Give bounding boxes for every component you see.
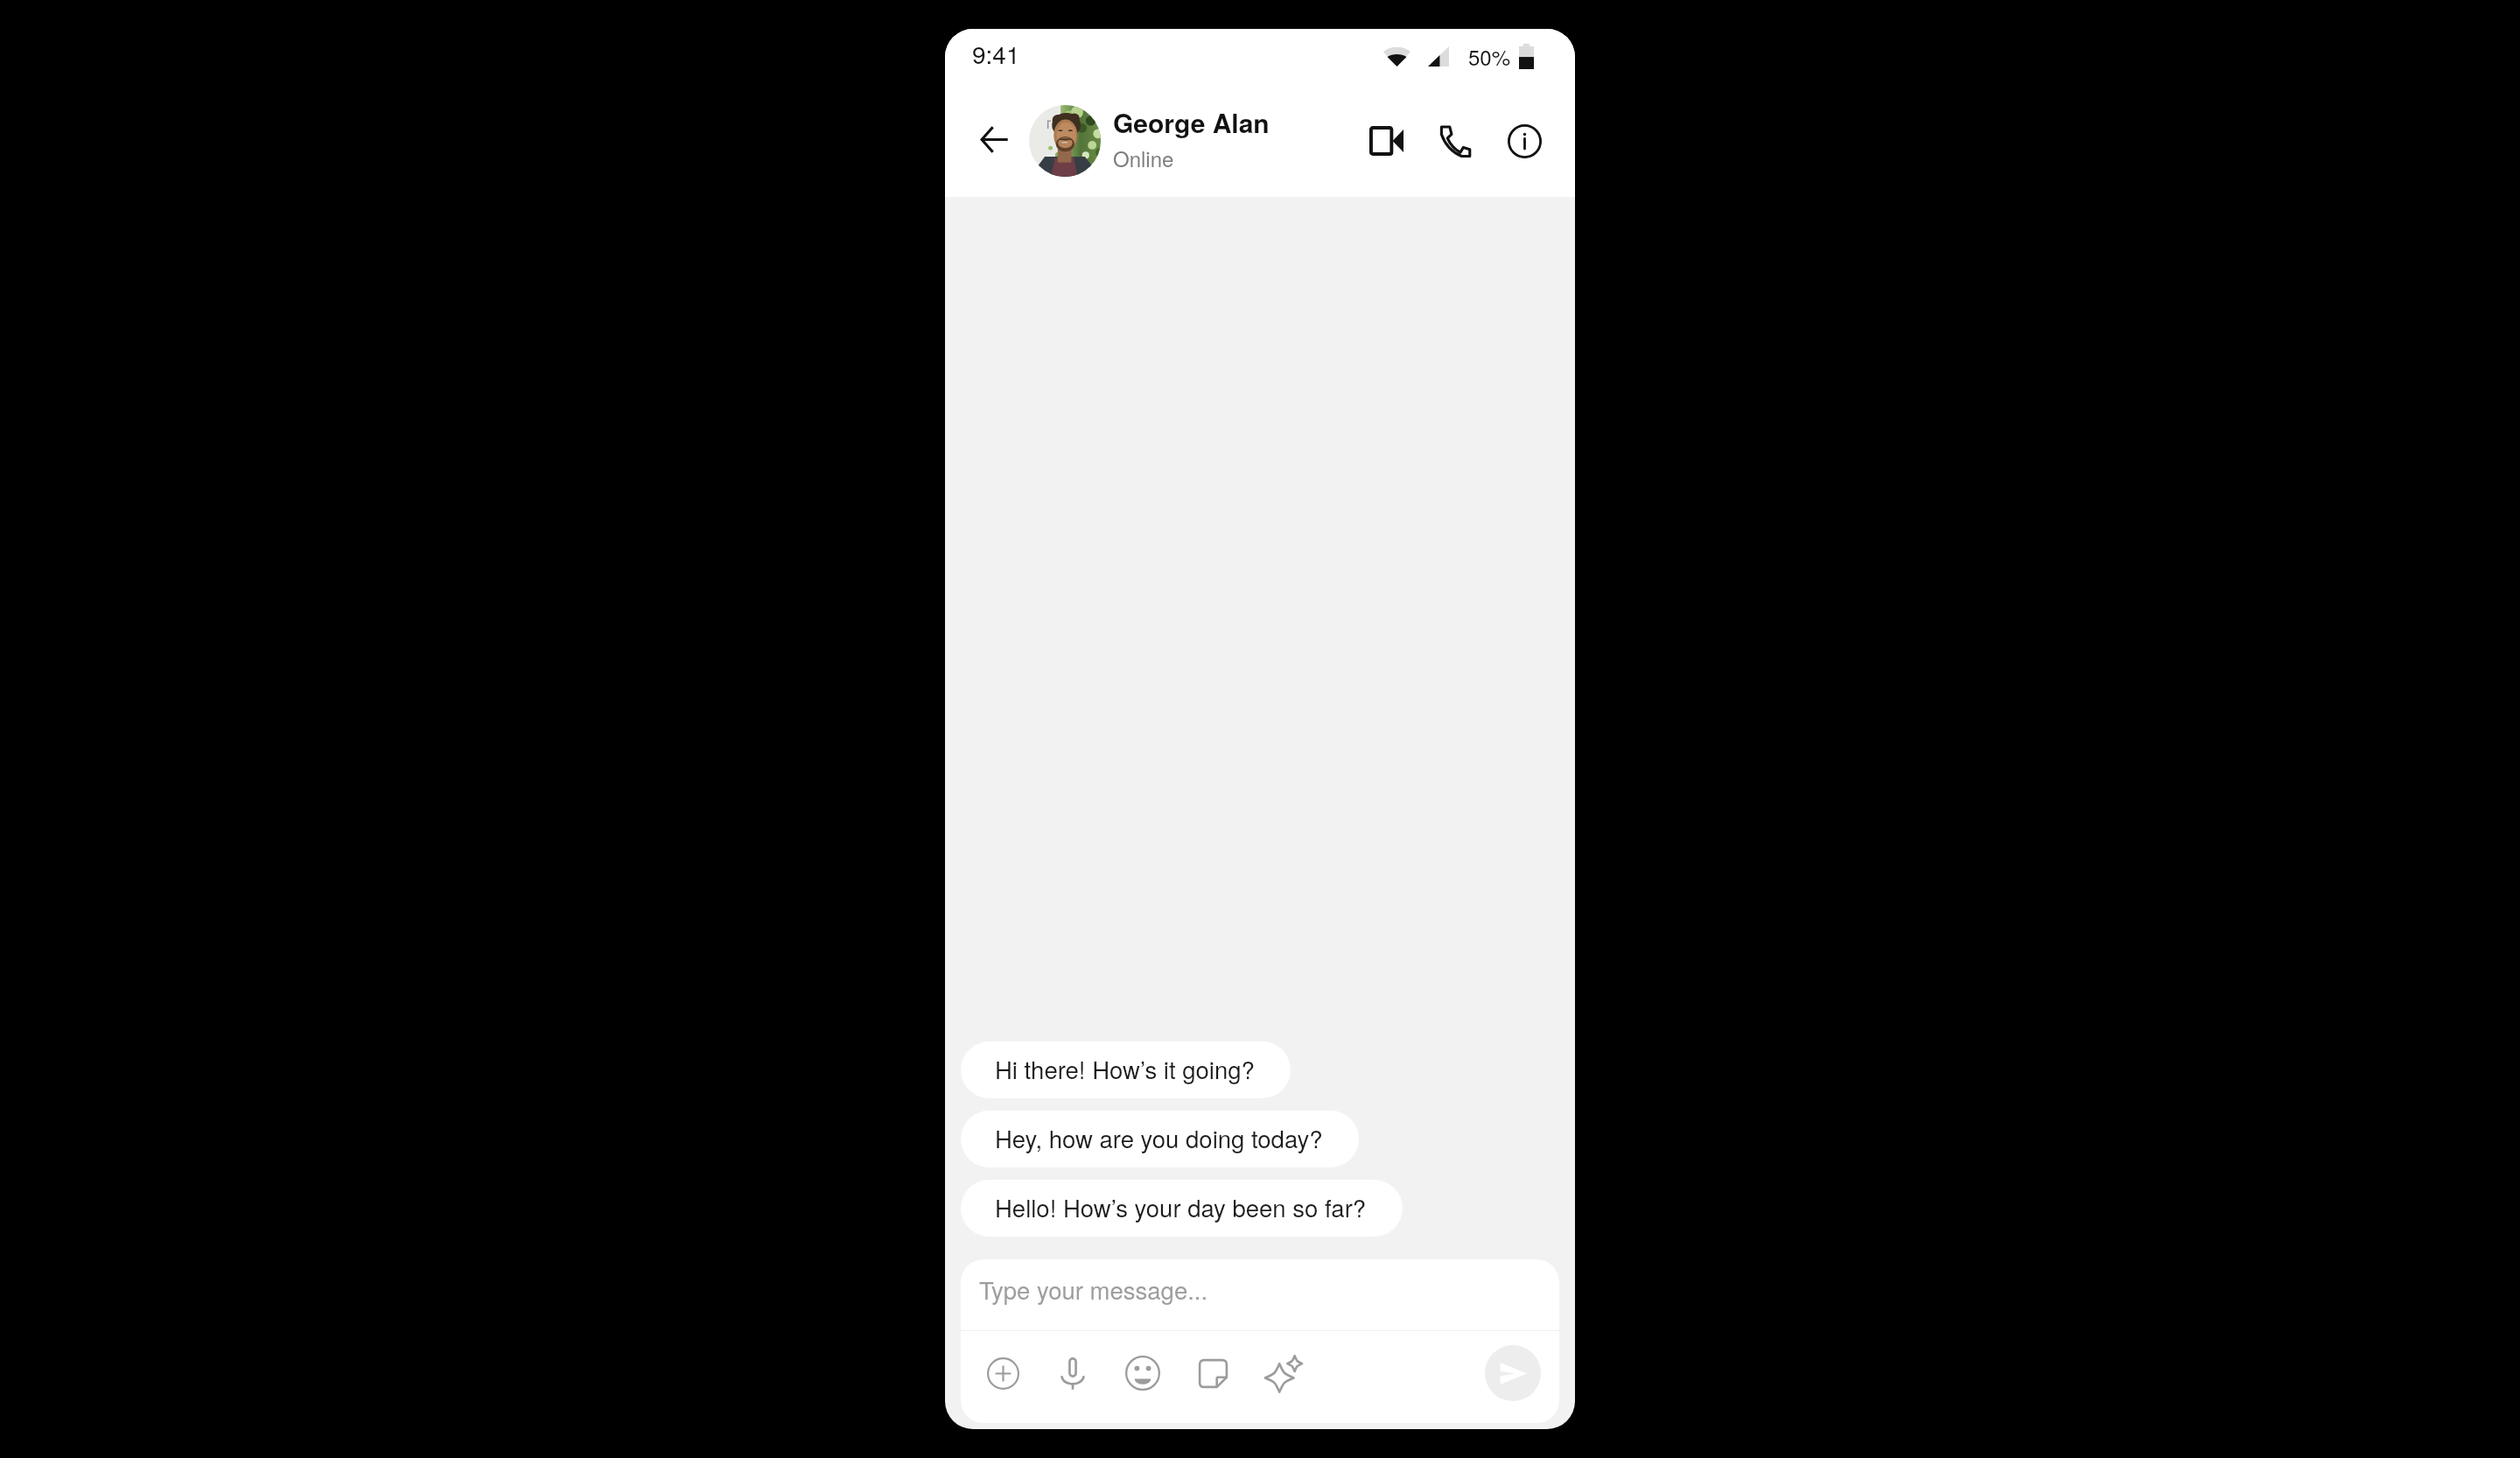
button[interactable]: Voice message <box>1038 1347 1108 1399</box>
staticText: George Alan <box>1113 103 1270 141</box>
staticText: 9:41 <box>972 36 1020 71</box>
button[interactable]: AI suggestions <box>1248 1347 1318 1399</box>
button[interactable]: Back <box>970 116 1018 163</box>
staticText: Hello! How’s your day been so far? <box>995 1189 1367 1223</box>
button[interactable]: Call <box>1430 116 1480 166</box>
button[interactable]: Video call <box>1361 116 1411 166</box>
button[interactable]: Send <box>1485 1345 1541 1401</box>
staticText: Type your message... <box>979 1272 1208 1306</box>
button[interactable]: Add attachment <box>968 1347 1038 1399</box>
button[interactable]: Type your message... <box>961 1259 1559 1330</box>
staticText: Online <box>1113 143 1174 172</box>
button[interactable]: Hey, how are you doing today? <box>961 1111 1359 1167</box>
button[interactable]: Hi there! How’s it going? <box>961 1041 1291 1098</box>
button[interactable]: George Alan profile photo <box>1029 105 1101 177</box>
staticText: 50% <box>1468 41 1511 71</box>
button[interactable]: Emoji <box>1108 1347 1178 1399</box>
staticText: Hey, how are you doing today? <box>995 1120 1323 1154</box>
button[interactable]: Hello! How’s your day been so far? <box>961 1180 1403 1237</box>
button[interactable]: Conversation info <box>1499 116 1550 166</box>
staticText: Hi there! How’s it going? <box>995 1051 1255 1085</box>
button[interactable]: Sticker <box>1178 1347 1248 1399</box>
